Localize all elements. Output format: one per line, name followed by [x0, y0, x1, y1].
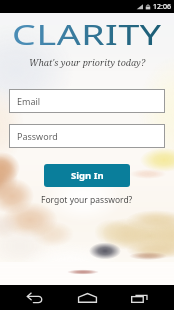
staticText: 12:06 [153, 2, 171, 12]
staticText: Email [17, 95, 41, 107]
button[interactable]: Home [70, 285, 104, 310]
button[interactable]: Back [18, 285, 52, 310]
staticText: Forgot your password? [41, 194, 133, 206]
button[interactable]: Recent apps [122, 285, 156, 310]
staticText: What's your priority today? [29, 56, 146, 68]
button[interactable]: Password [9, 124, 165, 148]
button[interactable]: Forgot your password? [37, 193, 137, 207]
staticText: CLARITY [12, 15, 162, 54]
staticText: Sign In [71, 169, 104, 182]
staticText: Password [17, 130, 58, 142]
button[interactable]: Sign In [44, 164, 130, 187]
button[interactable]: Email [9, 89, 165, 113]
